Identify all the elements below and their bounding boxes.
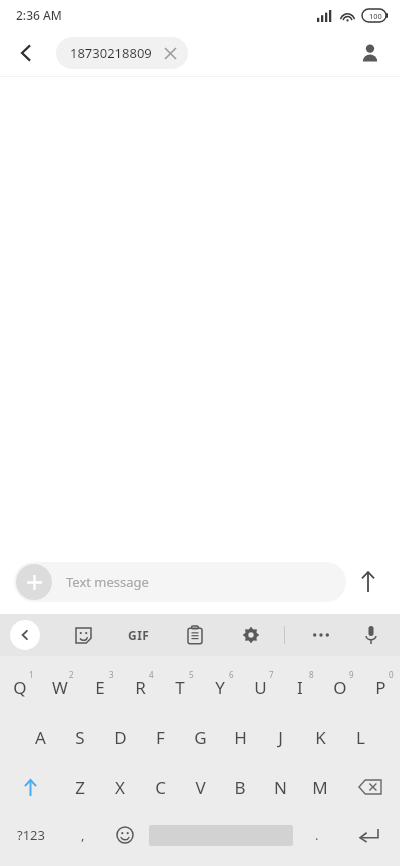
- staticText: R: [135, 676, 146, 699]
- staticText: 5: [189, 669, 194, 680]
- button[interactable]: Emoji: [104, 812, 146, 858]
- staticText: F: [156, 726, 165, 749]
- staticText: ,: [81, 826, 85, 844]
- button[interactable]: ?123: [0, 812, 62, 858]
- staticText: 7: [269, 669, 274, 680]
- button[interactable]: Back: [10, 620, 40, 650]
- staticText: M: [312, 776, 328, 799]
- staticText: Text message: [66, 573, 149, 591]
- staticText: X: [115, 776, 125, 799]
- button[interactable]: Q: [0, 662, 40, 712]
- staticText: 100: [369, 11, 382, 21]
- staticText: 18730218809: [70, 44, 152, 62]
- button[interactable]: .: [296, 812, 338, 858]
- button[interactable]: Remove recipient: [160, 43, 180, 63]
- button[interactable]: B: [220, 762, 260, 812]
- button[interactable]: F: [140, 712, 180, 762]
- staticText: Q: [13, 676, 27, 699]
- staticText: T: [175, 676, 185, 699]
- staticText: A: [35, 726, 46, 749]
- staticText: ?123: [17, 826, 45, 844]
- button[interactable]: V: [180, 762, 220, 812]
- staticText: I: [297, 676, 303, 699]
- button[interactable]: R: [120, 662, 160, 712]
- button[interactable]: P: [360, 662, 400, 712]
- staticText: V: [195, 776, 206, 799]
- staticText: C: [155, 776, 166, 799]
- button[interactable]: M: [300, 762, 340, 812]
- staticText: P: [375, 676, 386, 699]
- button[interactable]: L: [340, 712, 380, 762]
- staticText: H: [234, 726, 247, 749]
- staticText: 4: [149, 669, 154, 680]
- button[interactable]: Backspace: [340, 762, 400, 812]
- staticText: Y: [215, 676, 225, 699]
- staticText: B: [234, 776, 246, 799]
- button[interactable]: Enter: [338, 812, 400, 858]
- button[interactable]: T: [160, 662, 200, 712]
- staticText: 2: [69, 669, 74, 680]
- staticText: N: [274, 776, 287, 799]
- button[interactable]: D: [100, 712, 140, 762]
- button[interactable]: Z: [60, 762, 100, 812]
- staticText: 6: [229, 669, 234, 680]
- button[interactable]: G: [180, 712, 220, 762]
- staticText: S: [75, 726, 85, 749]
- button[interactable]: Contacts: [350, 33, 390, 73]
- button[interactable]: Stickers: [66, 618, 100, 652]
- staticText: O: [333, 676, 347, 699]
- button[interactable]: ,: [62, 812, 104, 858]
- staticText: 2:36 AM: [16, 7, 62, 23]
- button[interactable]: U: [240, 662, 280, 712]
- staticText: .: [315, 826, 319, 844]
- button[interactable]: Shift: [0, 762, 60, 812]
- button[interactable]: I: [280, 662, 320, 712]
- staticText: L: [356, 726, 365, 749]
- staticText: 9: [349, 669, 354, 680]
- staticText: 3: [109, 669, 114, 680]
- staticText: E: [95, 676, 105, 699]
- button[interactable]: Space: [149, 812, 293, 858]
- button[interactable]: S: [60, 712, 100, 762]
- button[interactable]: W: [40, 662, 80, 712]
- button[interactable]: J: [260, 712, 300, 762]
- button[interactable]: X: [100, 762, 140, 812]
- staticText: GIF: [128, 627, 150, 643]
- button[interactable]: N: [260, 762, 300, 812]
- button[interactable]: Voice input: [354, 618, 388, 652]
- staticText: J: [278, 726, 283, 749]
- button[interactable]: A: [20, 712, 60, 762]
- staticText: K: [315, 726, 326, 749]
- button[interactable]: 18730218809: [56, 37, 188, 69]
- staticText: U: [254, 676, 267, 699]
- button[interactable]: H: [220, 712, 260, 762]
- button[interactable]: Y: [200, 662, 240, 712]
- button[interactable]: Back: [6, 33, 46, 73]
- button[interactable]: C: [140, 762, 180, 812]
- staticText: 0: [389, 669, 394, 680]
- button[interactable]: Add attachment: [16, 564, 52, 600]
- button[interactable]: E: [80, 662, 120, 712]
- staticText: Z: [75, 776, 85, 799]
- button[interactable]: GIF: [120, 616, 158, 654]
- button[interactable]: More options: [304, 618, 338, 652]
- button[interactable]: O: [320, 662, 360, 712]
- staticText: 8: [309, 669, 314, 680]
- button[interactable]: Add attachment: [14, 562, 346, 602]
- button[interactable]: Clipboard: [178, 618, 212, 652]
- staticText: D: [114, 726, 127, 749]
- staticText: G: [194, 726, 207, 749]
- button[interactable]: Settings: [234, 618, 268, 652]
- staticText: W: [52, 676, 68, 699]
- button[interactable]: Send: [346, 560, 390, 604]
- button[interactable]: K: [300, 712, 340, 762]
- staticText: 1: [29, 669, 34, 680]
